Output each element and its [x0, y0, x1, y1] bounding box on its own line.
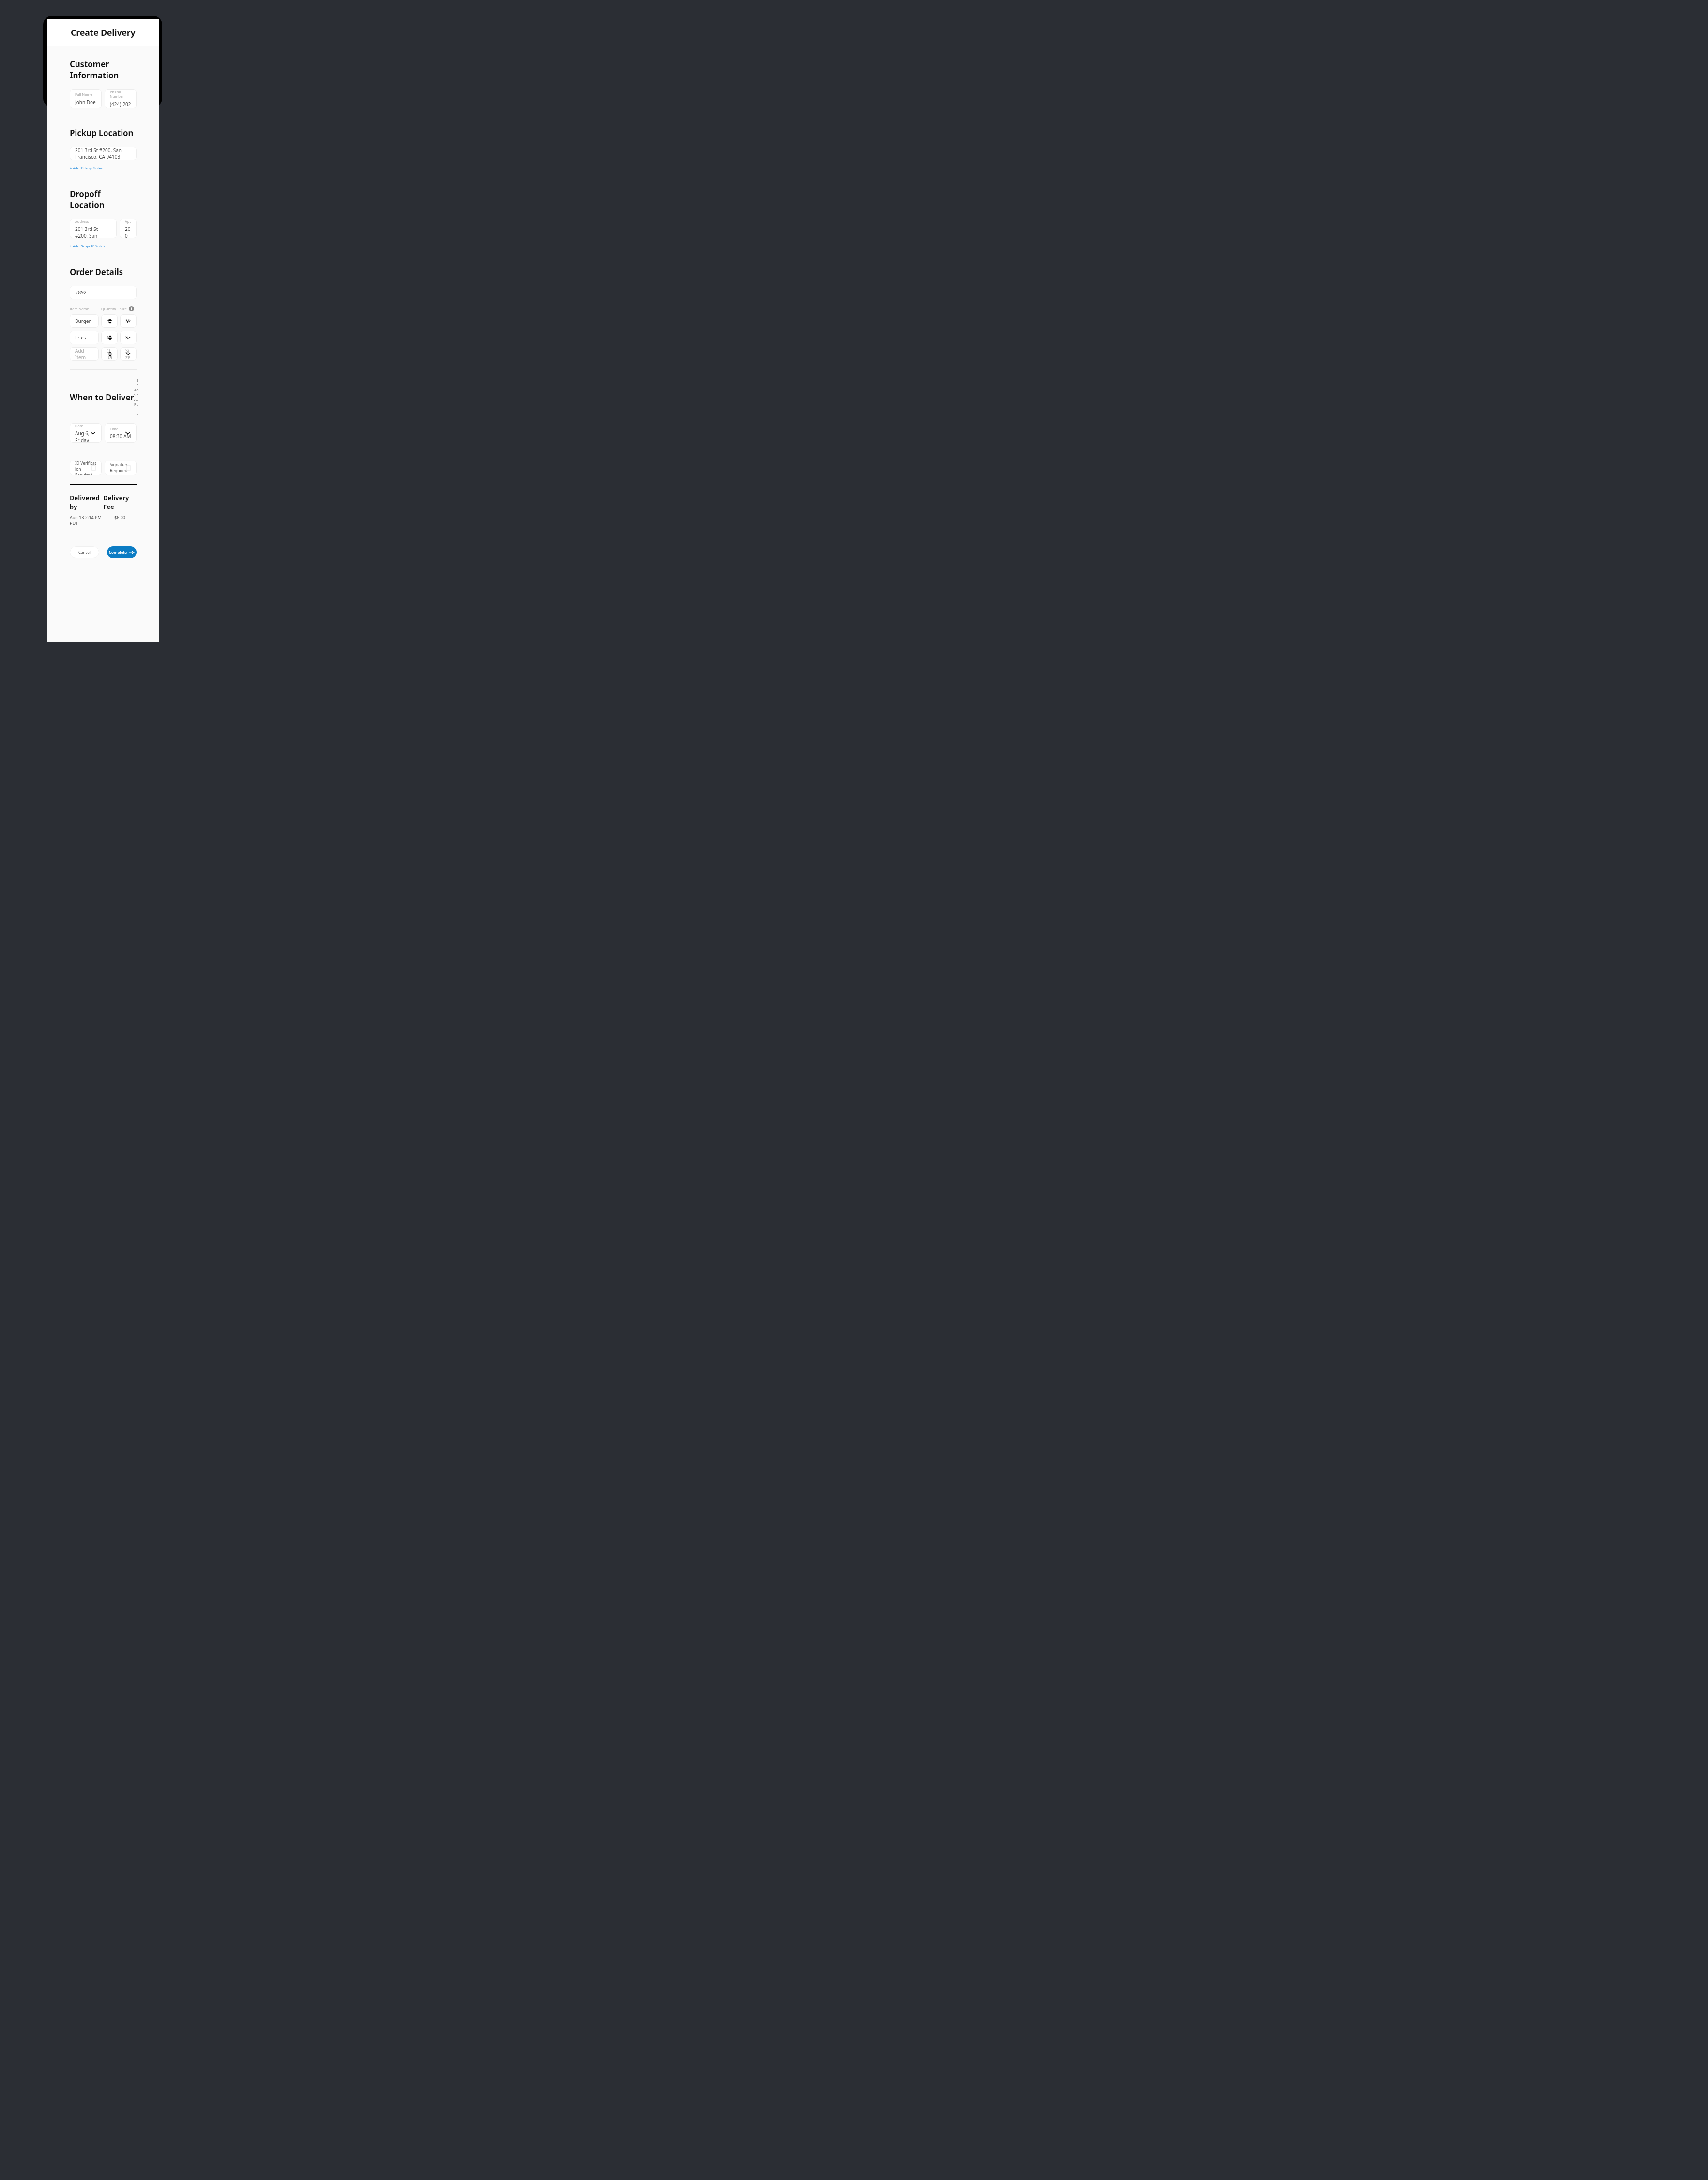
- staticText: Dropoff Location: [70, 188, 137, 211]
- staticText: Add Item: [75, 347, 93, 361]
- staticText: Apt: [125, 219, 131, 224]
- button[interactable]: ID Verification Required: [70, 461, 102, 475]
- button[interactable]: Fries: [70, 331, 99, 344]
- button[interactable]: Size: [120, 347, 137, 361]
- button[interactable]: #892: [70, 286, 137, 299]
- staticText: Cancel: [78, 550, 91, 555]
- staticText: Full Name: [75, 92, 92, 97]
- staticText: Signature Required: [110, 462, 131, 474]
- staticText: Fries: [75, 334, 86, 341]
- staticText: ID Verification Required: [75, 461, 96, 475]
- staticText: Quantity: [101, 307, 118, 311]
- staticText: Customer Information: [70, 59, 137, 81]
- staticText: 08:30 AM: [110, 433, 131, 440]
- button[interactable]: Apt: [120, 219, 137, 238]
- button[interactable]: Phone Number: [105, 89, 137, 108]
- button[interactable]: Cancel: [70, 546, 99, 558]
- button[interactable]: Date: [70, 423, 102, 443]
- button[interactable]: M: [120, 314, 137, 328]
- staticText: Order Details: [70, 266, 123, 277]
- staticText: Quantity: [107, 347, 112, 361]
- staticText: Delivered by: [70, 493, 103, 511]
- button[interactable]: + Add Dropoff Notes: [70, 244, 105, 248]
- button[interactable]: Add Item: [70, 347, 99, 361]
- staticText: 200: [125, 226, 131, 238]
- button[interactable]: 201 3rd St #200, San Francisco, CA 94103: [70, 147, 137, 160]
- button[interactable]: + Add Pickup Notes: [70, 166, 103, 170]
- button[interactable]: Quantity: [101, 347, 118, 361]
- button[interactable]: ASAP: [134, 378, 137, 416]
- staticText: Aug 6, Friday: [75, 430, 96, 443]
- button[interactable]: Signature Required: [105, 461, 137, 475]
- staticText: Burger: [75, 318, 91, 324]
- staticText: #892: [75, 289, 87, 296]
- staticText: 4: [107, 318, 109, 324]
- staticText: ASAP: [134, 387, 137, 407]
- button[interactable]: Complete: [107, 546, 137, 558]
- staticText: 201 3rd St #200, San Francisco, CA 94103: [75, 147, 131, 160]
- button[interactable]: S: [120, 331, 137, 344]
- staticText: (424)-202-1899: [110, 101, 131, 108]
- button[interactable]: 4: [101, 314, 118, 328]
- staticText: John Doe: [75, 99, 96, 106]
- button[interactable]: Burger: [70, 314, 99, 328]
- button[interactable]: 1: [101, 331, 118, 344]
- staticText: M: [125, 318, 130, 324]
- staticText: S: [125, 334, 128, 341]
- staticText: Phone Number: [110, 89, 131, 99]
- button[interactable]: Address: [70, 219, 117, 238]
- staticText: Delivery Fee: [103, 493, 137, 511]
- staticText: Address: [75, 219, 89, 224]
- button[interactable]: Full Name: [70, 89, 102, 108]
- staticText: Item Name: [70, 307, 99, 311]
- staticText: Size: [125, 347, 131, 361]
- button[interactable]: Time: [105, 423, 137, 443]
- staticText: 201 3rd St #200, San Francisco, CA 94103: [75, 226, 111, 238]
- staticText: Time: [110, 426, 119, 431]
- staticText: Aug 13 2:14 PM PDT: [70, 514, 103, 526]
- staticText: Create Delivery: [71, 27, 136, 39]
- staticText: Pickup Location: [70, 127, 134, 138]
- staticText: When to Deliver: [70, 392, 134, 403]
- staticText: $6.00: [114, 514, 126, 520]
- staticText: 1: [107, 334, 109, 341]
- staticText: Size: [120, 307, 127, 311]
- staticText: Complete: [109, 550, 127, 555]
- staticText: Date: [75, 423, 83, 428]
